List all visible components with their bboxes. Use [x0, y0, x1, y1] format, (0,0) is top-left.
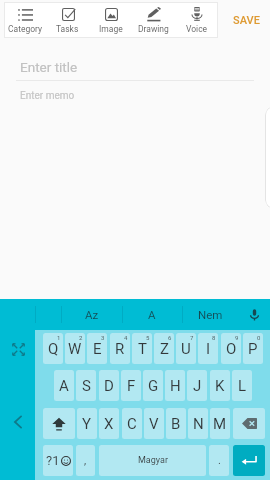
button[interactable]: G — [143, 370, 163, 401]
button[interactable]: Image — [89, 2, 132, 38]
button[interactable]: P — [243, 333, 263, 364]
staticText: , — [84, 454, 87, 467]
staticText: O — [226, 340, 237, 358]
button[interactable]: V — [144, 408, 164, 439]
staticText: Drawing — [138, 24, 169, 34]
staticText: N — [193, 415, 204, 433]
button[interactable]: J — [187, 370, 207, 401]
button[interactable]: Nem — [182, 299, 239, 330]
button[interactable]: , — [76, 445, 95, 476]
staticText: Category — [8, 24, 43, 34]
staticText: Tasks — [56, 24, 79, 34]
button[interactable]: H — [165, 370, 185, 401]
button[interactable]: Hide keyboard — [7, 411, 28, 432]
button[interactable]: R — [110, 333, 130, 364]
button[interactable]: Q — [43, 333, 63, 364]
staticText: J — [193, 377, 202, 395]
staticText: U — [181, 340, 191, 358]
staticText: P — [248, 340, 258, 358]
button[interactable]: B — [166, 408, 186, 439]
button[interactable]: N — [188, 408, 208, 439]
button[interactable]: Tasks — [46, 2, 89, 38]
staticText: K — [215, 377, 225, 395]
staticText: 8 — [212, 334, 216, 341]
staticText: T — [138, 340, 147, 358]
button[interactable]: Enter — [233, 445, 265, 476]
staticText: Magyar — [138, 455, 168, 466]
staticText: Voice — [186, 24, 208, 34]
staticText: 7 — [190, 334, 194, 341]
button[interactable]: A — [54, 370, 74, 401]
button[interactable]: Backspace — [233, 408, 265, 439]
staticText: Z — [160, 340, 169, 358]
staticText: V — [149, 415, 159, 433]
button[interactable]: I — [198, 333, 218, 364]
staticText: A — [59, 377, 69, 395]
staticText: A — [148, 308, 156, 321]
staticText: Q — [48, 340, 59, 358]
staticText: Enter title — [20, 59, 78, 75]
button[interactable]: . — [209, 445, 229, 476]
staticText: D — [104, 377, 114, 395]
staticText: 3 — [101, 334, 105, 341]
button[interactable]: Symbols — [43, 445, 73, 476]
staticText: C — [127, 415, 137, 433]
staticText: 2 — [79, 334, 83, 341]
staticText: Enter memo — [20, 90, 75, 102]
button[interactable]: U — [176, 333, 196, 364]
button[interactable]: S — [76, 370, 96, 401]
button[interactable]: X — [99, 408, 119, 439]
staticText: Az — [85, 308, 99, 321]
button[interactable]: Az — [61, 299, 122, 330]
staticText: Y — [82, 415, 92, 433]
button[interactable]: M — [210, 408, 230, 439]
button[interactable]: A — [122, 299, 182, 330]
staticText: ?1 — [46, 453, 60, 468]
button[interactable]: Shift — [43, 408, 75, 439]
staticText: 5 — [146, 334, 150, 341]
staticText: 9 — [235, 334, 239, 341]
staticText: X — [104, 415, 114, 433]
staticText: 1 — [57, 334, 61, 341]
button[interactable]: Magyar — [99, 445, 206, 476]
button[interactable]: Z — [154, 333, 174, 364]
button[interactable]: C — [122, 408, 142, 439]
button[interactable]: Voice — [175, 2, 218, 38]
staticText: Nem — [198, 308, 223, 321]
button[interactable]: W — [65, 333, 85, 364]
staticText: 0 — [257, 334, 261, 341]
button[interactable]: Y — [77, 408, 97, 439]
staticText: Image — [99, 24, 123, 34]
button[interactable]: SAVE — [233, 14, 260, 27]
button[interactable]: Category — [4, 2, 46, 38]
staticText: L — [238, 377, 247, 395]
button[interactable]: O — [221, 333, 241, 364]
button[interactable]: T — [132, 333, 152, 364]
button[interactable]: E — [87, 333, 107, 364]
button[interactable]: F — [121, 370, 141, 401]
staticText: F — [127, 377, 136, 395]
button[interactable]: D — [99, 370, 119, 401]
staticText: R — [115, 340, 125, 358]
button[interactable]: K — [210, 370, 230, 401]
staticText: 6 — [168, 334, 172, 341]
staticText: 4 — [124, 334, 128, 341]
staticText: I — [206, 340, 211, 358]
staticText: H — [170, 377, 181, 395]
staticText: G — [148, 377, 159, 395]
button[interactable]: L — [232, 370, 252, 401]
staticText: M — [213, 415, 227, 433]
staticText: . — [218, 454, 221, 467]
button[interactable]: Voice input — [239, 299, 270, 330]
button[interactable]: Drawing — [132, 2, 175, 38]
staticText: S — [82, 377, 91, 395]
staticText: E — [93, 340, 102, 358]
button[interactable]: Expand keyboard — [8, 339, 28, 359]
staticText: B — [171, 415, 181, 433]
staticText: W — [68, 340, 82, 358]
